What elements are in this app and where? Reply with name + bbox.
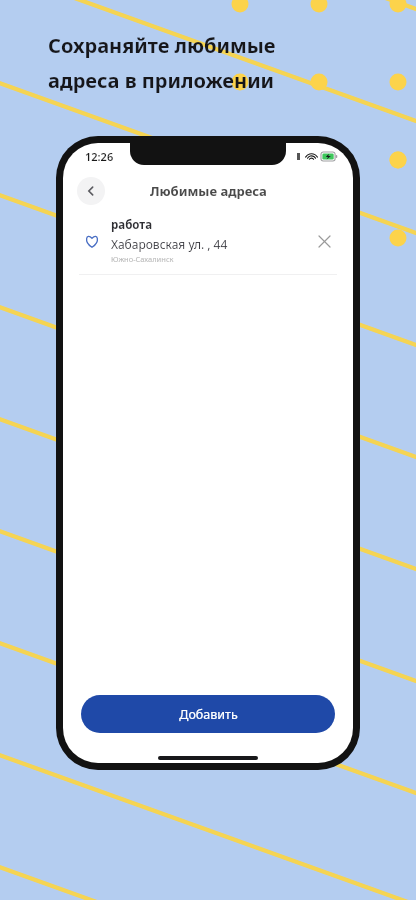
staticText: Добавить	[179, 706, 238, 723]
staticText: Сохраняйте любимые	[48, 32, 276, 59]
staticText: Южно-Сахалинск	[111, 254, 174, 264]
staticText: адреса в приложении	[48, 67, 275, 94]
button[interactable]: Favorite	[79, 228, 105, 254]
staticText: Хабаровская ул. , 44	[111, 236, 228, 252]
staticText: работа	[111, 217, 153, 233]
staticText: 12:26	[85, 149, 114, 164]
button[interactable]: Добавить	[81, 695, 335, 733]
button[interactable]: Back	[77, 177, 105, 205]
staticText: Любимые адреса	[150, 182, 267, 200]
button[interactable]: Favorite	[63, 213, 353, 274]
button[interactable]: Remove	[311, 228, 337, 254]
